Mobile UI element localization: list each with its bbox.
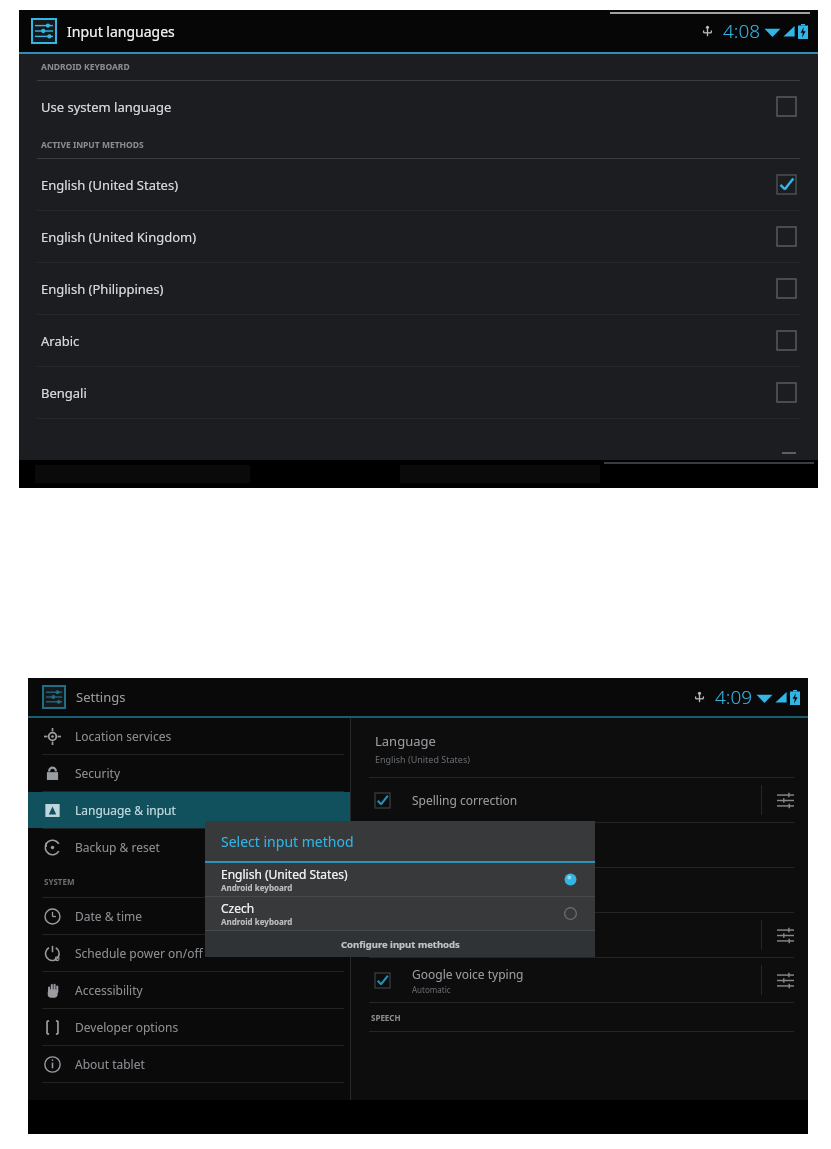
button[interactable]: Google voice typing	[351, 958, 808, 1002]
button[interactable]: Use system language	[19, 81, 818, 132]
staticText: Select input method	[221, 832, 354, 851]
staticText: 4:09	[715, 684, 753, 710]
button[interactable]: Settings for Android keyboard	[762, 913, 808, 957]
button[interactable]: Date & time	[28, 898, 350, 934]
staticText: English (United States)	[41, 176, 179, 194]
button[interactable]: Spelling correction	[351, 778, 808, 822]
staticText: Location services	[75, 728, 172, 744]
button[interactable]: Schedule power on/off	[28, 935, 350, 971]
staticText: Language & input	[75, 802, 176, 818]
staticText: 4:08	[723, 18, 761, 44]
button[interactable]: Android keyboard	[351, 913, 808, 957]
staticText: Developer options	[75, 1019, 179, 1035]
staticText: Android keyboard	[221, 882, 293, 893]
staticText: Arabic	[41, 332, 80, 350]
staticText: Configure input methods	[341, 938, 460, 951]
staticText: Schedule power on/off	[75, 945, 203, 961]
staticText: English (United States)	[375, 753, 470, 765]
staticText: Date & time	[75, 908, 143, 924]
button[interactable]: English (United Kingdom)	[19, 211, 818, 262]
button[interactable]: Czech	[205, 897, 595, 930]
staticText: Google voice typing	[412, 966, 524, 982]
staticText: Security	[75, 765, 121, 781]
staticText: English (Philippines)	[41, 280, 164, 298]
staticText: English (United States)	[221, 866, 348, 882]
staticText: Android keyboard	[412, 921, 513, 937]
button[interactable]: Security	[28, 755, 350, 791]
button[interactable]: About tablet	[28, 1046, 350, 1082]
staticText: SYSTEM	[44, 876, 75, 887]
staticText: ACTIVE INPUT METHODS	[41, 139, 144, 151]
button[interactable]: Configure input methods	[205, 931, 595, 957]
staticText: English (United Kingdom)	[41, 228, 197, 246]
staticText: Input languages	[67, 22, 175, 41]
staticText: Use system language	[41, 98, 172, 116]
staticText: Android keyboard	[221, 916, 293, 927]
staticText: ANDROID KEYBOARD	[41, 61, 130, 73]
button[interactable]: Arabic	[19, 315, 818, 366]
staticText: Bengali	[41, 384, 87, 402]
button[interactable]: Settings for Google voice typing	[762, 958, 808, 1002]
staticText: Spelling correction	[412, 792, 518, 808]
staticText: Backup & reset	[75, 839, 160, 855]
button[interactable]: Developer options	[28, 1009, 350, 1045]
staticText: About tablet	[75, 1056, 145, 1072]
staticText: Settings	[76, 688, 126, 706]
staticText: Automatic	[412, 984, 451, 995]
staticText: SPEECH	[371, 1012, 401, 1023]
button[interactable]: Bengali	[19, 367, 818, 418]
button[interactable]: Accessibility	[28, 972, 350, 1008]
button[interactable]: Backup & reset	[28, 829, 350, 865]
button[interactable]: Location services	[28, 718, 350, 754]
staticText: English (United States), Czech	[412, 939, 523, 950]
staticText: Czech	[221, 900, 255, 916]
button[interactable]: English (United States)	[19, 159, 818, 210]
button[interactable]: Settings for Spelling correction	[762, 778, 808, 822]
button[interactable]: Language & input	[28, 792, 350, 828]
staticText: Accessibility	[75, 982, 143, 998]
button[interactable]: English (Philippines)	[19, 263, 818, 314]
staticText: Language	[375, 732, 436, 750]
button[interactable]: English (United States)	[205, 863, 595, 896]
